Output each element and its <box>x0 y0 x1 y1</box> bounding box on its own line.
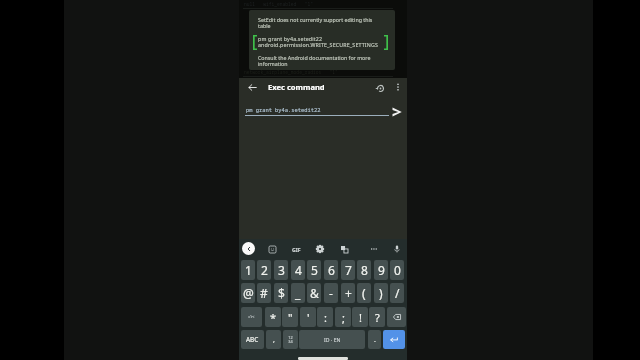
staticText: 5 <box>311 262 318 278</box>
staticText: 1 <box>245 262 252 278</box>
button[interactable]: , <box>266 330 281 349</box>
button[interactable]: 8 <box>357 260 371 280</box>
staticText: pm grant by4a.setedit22 <box>246 106 321 113</box>
button[interactable]: Enter <box>383 330 405 349</box>
staticText: . <box>374 335 376 345</box>
staticText: 6 <box>328 262 335 278</box>
button[interactable]: Stickers <box>266 243 278 255</box>
staticText: 9 <box>378 262 385 278</box>
staticText: ' <box>307 310 310 325</box>
button[interactable]: Translate <box>338 243 350 255</box>
staticText: pm grant by4a.setedit22 android.permissi… <box>258 35 390 48</box>
button[interactable]: More symbols <box>241 307 262 327</box>
staticText: Consult the Android documentation for mo… <box>258 54 374 67</box>
button[interactable]: / <box>390 283 404 303</box>
button[interactable]: 0 <box>390 260 404 280</box>
button[interactable]: 9 <box>374 260 388 280</box>
staticText: ; <box>342 310 345 325</box>
staticText: _ <box>295 285 301 301</box>
staticText: / <box>395 285 400 301</box>
button[interactable]: Send <box>391 106 402 117</box>
button[interactable]: History <box>373 81 388 96</box>
button[interactable]: 4 <box>291 260 305 280</box>
button[interactable]: @ <box>241 283 255 303</box>
staticText: $ <box>278 285 285 301</box>
button[interactable]: More <box>368 243 380 255</box>
button[interactable]: - <box>324 283 338 303</box>
staticText: ID · EN <box>324 336 341 343</box>
staticText: # <box>260 285 268 301</box>
button[interactable]: $ <box>274 283 288 303</box>
staticText: @ <box>243 285 254 301</box>
button[interactable]: 5 <box>307 260 321 280</box>
staticText: =\< <box>248 314 255 320</box>
button[interactable]: More options <box>392 81 404 93</box>
staticText: ! <box>359 310 362 325</box>
button[interactable]: 7 <box>341 260 355 280</box>
button[interactable]: # <box>257 283 271 303</box>
staticText: 8 <box>361 262 368 278</box>
staticText: Exec command <box>268 82 325 92</box>
staticText: - <box>329 285 333 301</box>
staticText: 7 <box>345 262 352 278</box>
staticText: : <box>324 310 327 325</box>
staticText: 2 <box>261 262 268 278</box>
button[interactable]: ( <box>357 283 371 303</box>
staticText: ? <box>375 310 380 325</box>
button[interactable]: + <box>341 283 355 303</box>
button[interactable]: & <box>307 283 321 303</box>
staticText: 4 <box>295 262 302 278</box>
staticText: + <box>345 285 352 301</box>
button[interactable]: ; <box>335 307 351 327</box>
button[interactable]: ) <box>374 283 388 303</box>
staticText: & <box>310 285 319 301</box>
button[interactable]: GIF <box>290 243 302 255</box>
button[interactable]: ! <box>352 307 368 327</box>
staticText: ABC <box>246 335 259 344</box>
button[interactable]: " <box>282 307 298 327</box>
staticText: 12 34 <box>288 335 293 344</box>
staticText: , <box>273 335 275 345</box>
button[interactable]: * <box>265 307 281 327</box>
button[interactable]: Back <box>244 79 260 95</box>
staticText: ( <box>362 285 366 301</box>
button[interactable]: ? <box>369 307 385 327</box>
button[interactable]: 3 <box>274 260 288 280</box>
button[interactable]: Settings <box>314 243 326 255</box>
staticText: network_airplane_mode_radios "1" <box>244 69 338 75</box>
button[interactable]: Backspace <box>387 307 406 327</box>
button[interactable]: ' <box>300 307 316 327</box>
staticText: ) <box>379 285 383 301</box>
button[interactable]: Numbers <box>283 330 298 349</box>
button[interactable]: Voice input <box>391 243 403 255</box>
staticText: 0 <box>394 262 401 278</box>
button[interactable]: : <box>317 307 333 327</box>
button[interactable]: 1 <box>241 260 255 280</box>
staticText: null wifi_enabled "1" <box>244 1 313 7</box>
staticText: " <box>288 310 293 325</box>
staticText: 3 <box>278 262 285 278</box>
button[interactable]: . <box>368 330 381 349</box>
button[interactable]: 2 <box>257 260 271 280</box>
button[interactable]: ID · EN <box>299 330 365 349</box>
staticText: SetEdit does not currently support editi… <box>258 16 374 29</box>
button[interactable]: _ <box>291 283 305 303</box>
button[interactable]: 6 <box>324 260 338 280</box>
button[interactable]: Collapse keyboard toolbar <box>242 242 255 255</box>
staticText: GIF <box>292 246 301 253</box>
staticText: * <box>270 310 277 325</box>
button[interactable]: ABC <box>241 330 264 349</box>
